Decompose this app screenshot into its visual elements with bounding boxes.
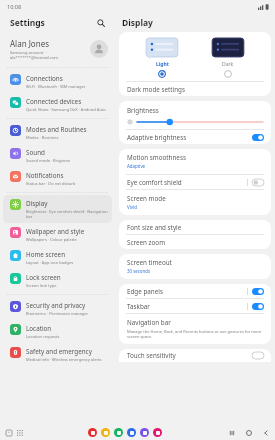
staticText: Eye comfort shield [127, 178, 182, 187]
button[interactable]: Lock screen [3, 269, 112, 292]
button[interactable]: Dark mode settings [119, 82, 271, 96]
button[interactable]: Connections [3, 70, 112, 93]
button[interactable]: Safety and emergency [3, 343, 112, 366]
staticText: Brightness · Eye comfort shield · Naviga… [26, 209, 108, 219]
staticText: Adaptive brightness [127, 133, 187, 142]
staticText: Edge panels [127, 287, 163, 296]
staticText: Wallpapers · Colour palette [26, 237, 77, 242]
staticText: Modes and Routines [26, 125, 87, 134]
staticText: 10:08 [7, 3, 22, 10]
staticText: Medical info · Wireless emergency alerts [26, 357, 102, 362]
staticText: Display [122, 17, 153, 29]
staticText: Samsung account · [10, 50, 47, 55]
staticText: Touch sensitivity [127, 351, 176, 360]
button[interactable]: Recent apps [4, 428, 14, 438]
staticText: Notifications [26, 171, 64, 180]
button[interactable]: Screen timeout [119, 254, 271, 279]
staticText: Screen zoom [127, 238, 166, 247]
staticText: Biometrics · Permission manager [26, 311, 89, 316]
button[interactable]: Navigation bar [119, 314, 271, 344]
staticText: Light [156, 61, 169, 68]
button[interactable]: Taskbar [119, 299, 271, 313]
button[interactable]: Dark [205, 38, 251, 78]
button[interactable]: Security and privacy [3, 297, 112, 320]
staticText: Taskbar [127, 302, 150, 311]
button[interactable]: Home screen [3, 246, 112, 269]
button[interactable]: All apps [15, 428, 25, 438]
staticText: Dark mode settings [127, 85, 186, 94]
staticText: Connections [26, 74, 63, 83]
staticText: Security and privacy [26, 301, 86, 310]
button[interactable]: Home [243, 427, 254, 438]
button[interactable]: Screen mode [119, 190, 271, 215]
staticText: Location requests [26, 334, 60, 339]
staticText: Safety and emergency [26, 347, 92, 356]
button[interactable]: Connected devices [3, 93, 112, 116]
staticText: Sound [26, 148, 45, 157]
staticText: Connected devices [26, 97, 82, 106]
staticText: Location [26, 324, 52, 333]
button[interactable]: App 1 [88, 428, 97, 437]
button[interactable]: Eye comfort shield [119, 175, 271, 189]
staticText: Sound mode · Ringtone [26, 158, 71, 163]
staticText: Settings [10, 17, 45, 29]
staticText: Screen lock type [26, 283, 57, 288]
button[interactable]: Touch sensitivity [119, 349, 271, 362]
button[interactable]: Light [139, 38, 185, 78]
staticText: Lock screen [26, 273, 61, 282]
staticText: Wi-Fi · Bluetooth · SIM manager [26, 84, 86, 89]
button[interactable]: Recents [226, 427, 237, 438]
button[interactable]: Edge panels [119, 284, 271, 298]
button[interactable]: Wallpaper and style [3, 223, 112, 246]
staticText: Status bar · Do not disturb [26, 181, 76, 186]
staticText: Display [26, 199, 48, 208]
button[interactable]: Search settings [94, 16, 107, 29]
staticText: Navigation bar [127, 318, 171, 327]
staticText: 30 seconds [127, 268, 151, 274]
button[interactable]: App 4 [127, 428, 136, 437]
staticText: Motion smoothness [127, 153, 186, 162]
button[interactable]: Motion smoothness [119, 149, 271, 174]
button[interactable]: Adaptive brightness [119, 130, 271, 144]
button[interactable]: App 3 [114, 428, 123, 437]
button[interactable]: Location [3, 320, 112, 343]
button[interactable]: Sound [3, 144, 112, 167]
staticText: Screen mode [127, 194, 166, 203]
staticText: ala*******@hotmail.com [10, 55, 59, 60]
staticText: Vivid [127, 204, 137, 210]
staticText: Dark [222, 61, 234, 68]
staticText: Manage the Home, Back, and Recents butto… [127, 329, 263, 339]
staticText: Screen timeout [127, 258, 172, 267]
button[interactable]: Font size and style [119, 220, 271, 234]
staticText: Adaptive [127, 163, 146, 169]
button[interactable]: Back [260, 427, 271, 438]
button[interactable]: Notifications [3, 167, 112, 190]
staticText: Alan Jones [10, 38, 49, 49]
button[interactable]: App 6 [153, 428, 162, 437]
button[interactable]: Alan Jones [0, 32, 115, 65]
staticText: Modes · Routines [26, 135, 59, 140]
staticText: Wallpaper and style [26, 227, 85, 236]
staticText: Font size and style [127, 223, 182, 232]
staticText: Home screen [26, 250, 66, 259]
button[interactable]: App 5 [140, 428, 149, 437]
button[interactable]: Display [3, 195, 112, 223]
button[interactable]: Screen zoom [119, 235, 271, 249]
staticText: Brightness [127, 106, 159, 115]
button[interactable]: App 2 [101, 428, 110, 437]
button[interactable]: Modes and Routines [3, 121, 112, 144]
staticText: Quick Share · Samsung DeX · Android Auto [26, 107, 106, 112]
staticText: Layout · App icon badges [26, 260, 74, 265]
